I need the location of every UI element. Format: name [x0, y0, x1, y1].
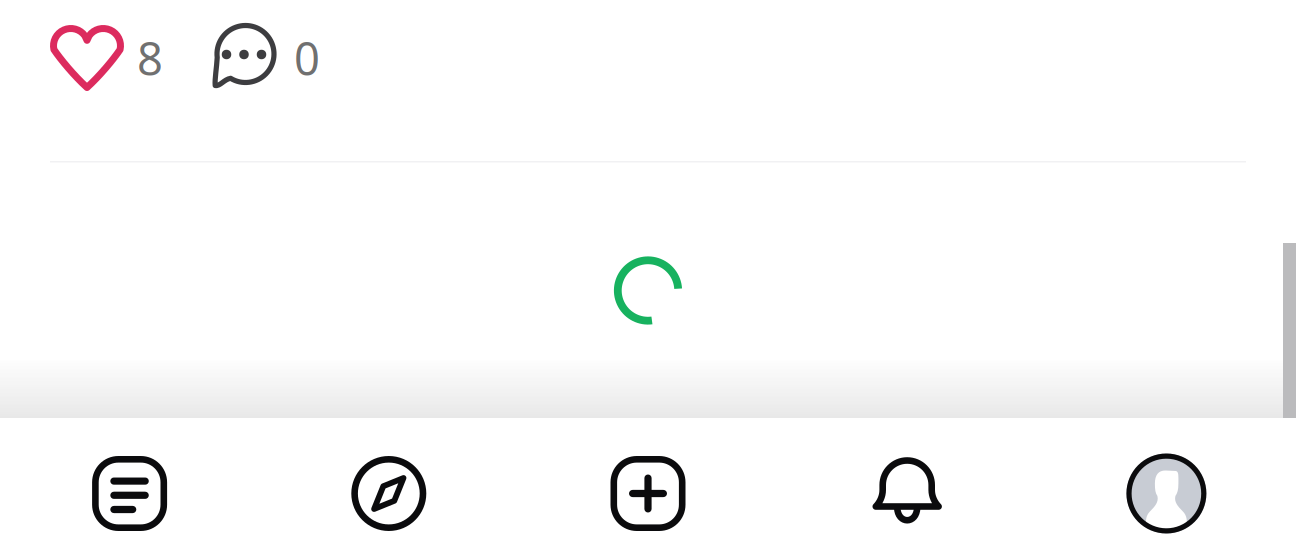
button[interactable]: Comment — [187, 0, 344, 116]
button[interactable]: Explore — [259, 443, 518, 544]
button[interactable]: Notifications — [778, 443, 1037, 544]
button[interactable]: Profile — [1037, 443, 1296, 544]
button[interactable]: Like — [0, 0, 187, 116]
staticText: 8 — [137, 28, 163, 88]
button[interactable]: Compose — [518, 443, 778, 544]
staticText: 0 — [294, 28, 320, 88]
button[interactable]: Home — [0, 443, 259, 544]
